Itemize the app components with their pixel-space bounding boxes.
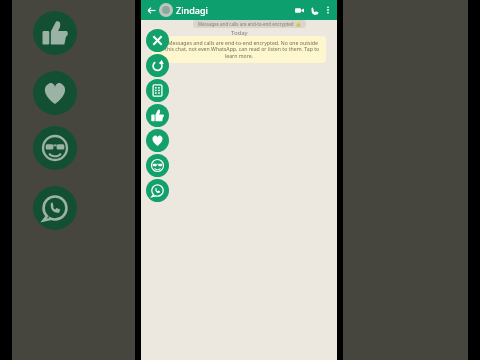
button[interactable]: Messages and calls are end-to-end encryp… <box>198 21 301 27</box>
button[interactable]: More options <box>322 4 334 16</box>
staticText: Today <box>231 29 248 37</box>
button[interactable]: Close <box>146 29 169 52</box>
staticText: Messages and calls are end-to-end encryp… <box>198 21 294 27</box>
staticText: Zindagi <box>176 4 208 16</box>
button[interactable]: Profile photo <box>159 3 173 17</box>
staticText: 🔒 Messages and calls are end-to-end encr… <box>157 39 321 60</box>
button[interactable]: Love <box>146 129 169 152</box>
button[interactable]: Record <box>146 54 169 77</box>
button[interactable]: Back <box>144 3 158 17</box>
button[interactable]: Voice call <box>307 3 322 18</box>
button[interactable]: Emoji <box>33 126 77 170</box>
button[interactable]: Love <box>33 71 77 115</box>
button[interactable]: Like <box>33 11 77 55</box>
button[interactable]: WhatsApp <box>33 186 77 230</box>
button[interactable]: Video call <box>292 3 307 18</box>
button[interactable]: WhatsApp <box>146 179 169 202</box>
button[interactable]: 🔒 Messages and calls are end-to-end encr… <box>157 39 321 60</box>
button[interactable]: Like <box>146 104 169 127</box>
button[interactable]: Keypad <box>146 79 169 102</box>
button[interactable]: Emoji <box>146 154 169 177</box>
